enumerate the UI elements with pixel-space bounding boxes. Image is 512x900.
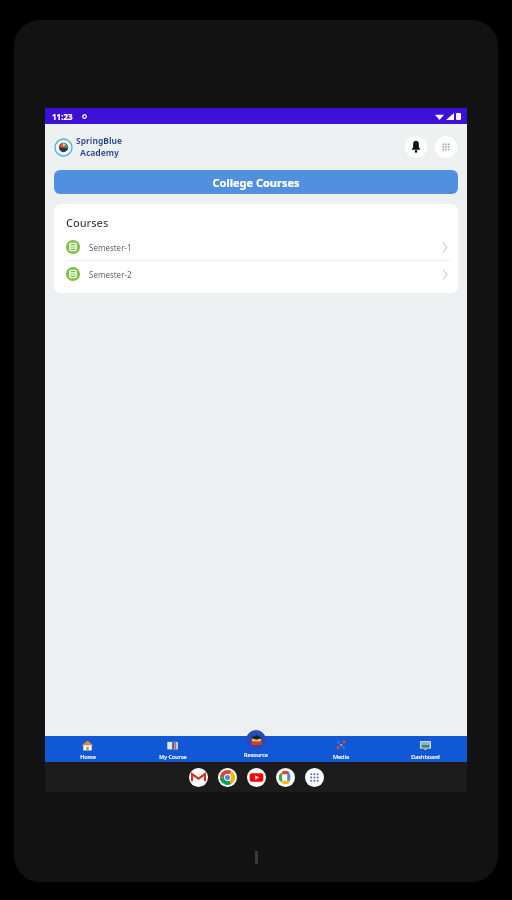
staticText: Dashboard [411,753,440,760]
button[interactable]: Gmail [189,768,208,787]
staticText: Media [333,753,349,760]
button[interactable]: Dashboard [383,736,467,762]
staticText: SpringBlue [76,135,123,147]
staticText: Home [80,753,96,760]
button[interactable]: Home [45,736,130,762]
staticText: College Courses [212,175,300,190]
staticText: Semester-2 [89,269,132,280]
button[interactable]: Menu [435,136,457,158]
button[interactable]: Notifications [405,136,427,158]
button[interactable]: Media [299,736,383,762]
button[interactable]: SpringBlue [55,135,123,159]
button[interactable]: Chrome [218,768,237,787]
staticText: Semester-1 [89,242,132,253]
staticText: Courses [66,215,109,230]
button[interactable]: College Courses [54,170,458,194]
staticText: My Course [159,753,187,760]
button[interactable]: Semester-1 [54,234,458,260]
staticText: Resource [244,751,268,758]
button[interactable]: Photos [276,768,295,787]
button[interactable]: YouTube [247,768,266,787]
button[interactable]: Semester-2 [54,261,458,287]
button[interactable]: Resource [226,730,286,762]
button[interactable]: My Course [130,736,215,762]
staticText: Academy [80,147,119,159]
staticText: 11:23 [52,111,73,122]
button[interactable]: All apps [305,768,324,787]
